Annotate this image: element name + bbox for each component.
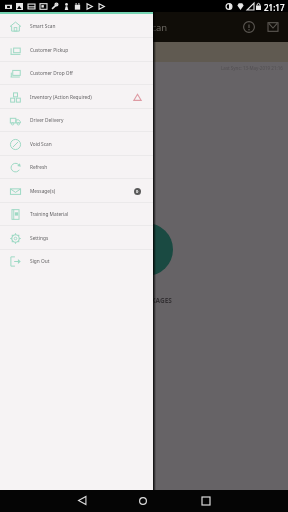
button[interactable]: Message(s)	[0, 179, 153, 203]
staticText: Driver Delivery	[30, 117, 64, 124]
button[interactable]: Settings	[0, 226, 153, 250]
staticText: Last Sync: 13-May-2019 21:16	[221, 65, 283, 71]
staticText: Smart Scan	[30, 23, 56, 30]
staticText: 0	[136, 189, 139, 194]
button[interactable]: Back	[72, 490, 93, 511]
button[interactable]: Home	[132, 490, 153, 511]
button[interactable]: Driver Delivery	[0, 108, 153, 132]
button[interactable]: Info	[237, 15, 261, 39]
staticText: Inventory (Action Required)	[30, 94, 92, 101]
staticText: Refresh	[30, 164, 48, 171]
staticText: Customer Drop Off	[30, 70, 73, 77]
button[interactable]: Void Scan	[0, 132, 153, 156]
button[interactable]: Customer Pickup	[0, 38, 153, 62]
button[interactable]: Smart Scan	[0, 14, 153, 38]
staticText: Message(s)	[30, 188, 56, 195]
staticText: Customer Pickup	[30, 47, 69, 54]
staticText: 21:17	[264, 2, 285, 13]
staticText: Settings	[30, 235, 49, 242]
button[interactable]: Inventory (Action Required)	[0, 85, 153, 109]
button[interactable]: Recents	[195, 490, 216, 511]
button[interactable]: Training Material	[0, 202, 153, 226]
button[interactable]: Customer Drop Off	[0, 61, 153, 85]
button[interactable]: Messages	[261, 15, 285, 39]
staticText: Smart Scan	[117, 21, 168, 34]
staticText: PACKAGES	[139, 296, 172, 305]
staticText: Training Material	[30, 211, 69, 218]
button[interactable]: Scan packages	[120, 223, 173, 276]
button[interactable]: Refresh	[0, 155, 153, 179]
staticText: Void Scan	[30, 141, 52, 148]
button[interactable]: Sign Out	[0, 249, 153, 273]
staticText: Sign Out	[30, 258, 50, 265]
